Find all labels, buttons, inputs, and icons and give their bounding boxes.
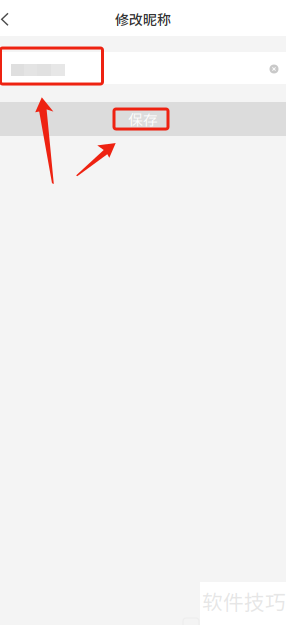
button[interactable]: 保存 [0, 102, 286, 136]
staticText: 保存 [128, 108, 158, 130]
button[interactable]: Back [0, 0, 26, 36]
staticText: 修改昵称 [115, 9, 171, 29]
button[interactable]: Clear text [263, 58, 285, 80]
staticText: 软件技巧 [202, 586, 286, 616]
button[interactable]: Nickname [0, 52, 286, 84]
